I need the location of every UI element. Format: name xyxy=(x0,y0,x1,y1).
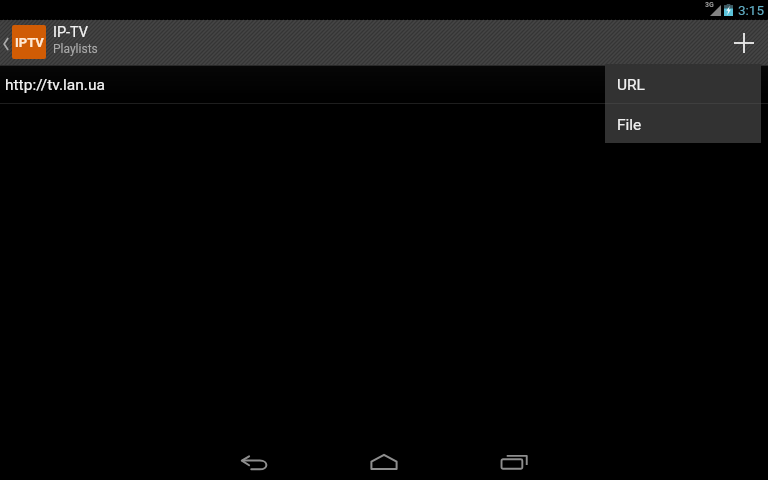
staticText: 3:15 xyxy=(738,2,765,18)
button[interactable]: URL xyxy=(605,64,761,103)
button[interactable]: Home xyxy=(336,440,432,480)
button[interactable]: http://tv.lan.ua xyxy=(0,66,768,103)
staticText: File xyxy=(617,116,642,134)
button[interactable]: Add playlist xyxy=(713,20,768,66)
button[interactable]: Back xyxy=(206,440,302,480)
staticText: IP-TV xyxy=(53,24,89,41)
staticText: URL xyxy=(617,76,645,94)
staticText: Playlists xyxy=(53,42,98,56)
staticText: http://tv.lan.ua xyxy=(5,76,105,94)
button[interactable]: Recent apps xyxy=(466,440,562,480)
staticText: IPTV xyxy=(15,35,44,50)
button[interactable]: Up xyxy=(0,26,98,60)
button[interactable]: File xyxy=(605,104,761,143)
staticText: 3G xyxy=(705,1,714,9)
